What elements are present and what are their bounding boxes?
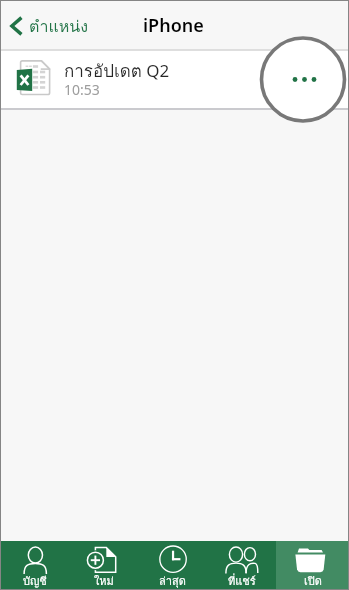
staticText: 10:53	[64, 80, 100, 99]
staticText: ที่แชร์	[228, 572, 256, 588]
button[interactable]: Open	[276, 541, 349, 590]
button[interactable]: ตำแหน่ง	[8, 13, 88, 38]
staticText: ตำแหน่ง	[29, 14, 88, 39]
staticText: บัญชี	[23, 572, 47, 588]
staticText: iPhone	[143, 13, 204, 38]
button[interactable]: Account	[0, 541, 69, 590]
staticText: เปิด	[304, 572, 322, 588]
button[interactable]: More options	[283, 51, 349, 108]
button[interactable]: Shared	[207, 541, 276, 590]
button[interactable]: การอัปเดต Q2	[0, 51, 349, 108]
button[interactable]: New	[69, 541, 138, 590]
staticText: ล่าสุด	[159, 572, 186, 588]
button[interactable]: Recent	[138, 541, 207, 590]
staticText: การอัปเดต Q2	[64, 57, 170, 84]
staticText: ใหม่	[94, 572, 114, 588]
